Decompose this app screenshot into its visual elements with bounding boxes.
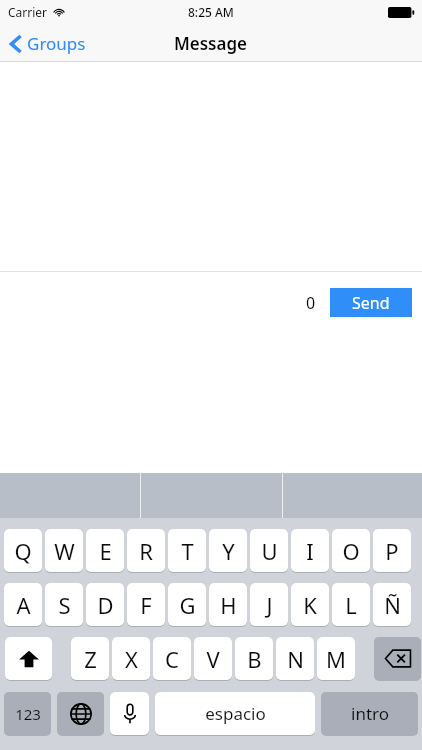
button[interactable]: D xyxy=(86,582,124,626)
staticText: Q xyxy=(14,536,32,566)
button[interactable] xyxy=(57,691,104,735)
button[interactable]: I xyxy=(291,528,329,572)
staticText: W xyxy=(54,536,75,566)
button[interactable]: Send xyxy=(330,288,412,317)
button[interactable]: J xyxy=(250,582,288,626)
button[interactable]: Z xyxy=(71,636,109,680)
button[interactable]: O xyxy=(332,528,370,572)
button[interactable]: F xyxy=(127,582,165,626)
staticText: R xyxy=(139,536,153,566)
staticText: K xyxy=(303,590,317,620)
staticText: E xyxy=(99,536,112,566)
button[interactable]: N xyxy=(276,636,314,680)
button[interactable]: T xyxy=(168,528,206,572)
staticText: espacio xyxy=(205,702,266,725)
staticText: Send xyxy=(352,292,390,314)
button[interactable]: W xyxy=(45,528,83,572)
staticText: M xyxy=(326,644,346,674)
button[interactable]: espacio xyxy=(155,691,315,735)
staticText: U xyxy=(261,536,278,566)
button[interactable]: A xyxy=(4,582,42,626)
staticText: V xyxy=(206,644,220,674)
button[interactable]: G xyxy=(168,582,206,626)
button[interactable]: Groups xyxy=(10,32,86,55)
staticText: 0 xyxy=(306,292,316,314)
staticText: S xyxy=(58,590,71,620)
button[interactable]: Ñ xyxy=(373,582,411,626)
button[interactable]: S xyxy=(45,582,83,626)
staticText: Carrier xyxy=(8,4,48,20)
staticText: T xyxy=(181,536,194,566)
staticText: G xyxy=(179,590,196,620)
staticText: Z xyxy=(84,644,97,674)
button[interactable] xyxy=(110,691,149,735)
staticText: L xyxy=(345,590,357,620)
button[interactable]: L xyxy=(332,582,370,626)
button[interactable]: U xyxy=(250,528,288,572)
staticText: Ñ xyxy=(384,590,401,620)
button[interactable]: B xyxy=(235,636,273,680)
staticText: A xyxy=(16,590,31,620)
staticText: H xyxy=(220,590,237,620)
button[interactable]: M xyxy=(317,636,355,680)
staticText: Message xyxy=(174,32,248,55)
staticText: I xyxy=(306,536,314,566)
button[interactable]: K xyxy=(291,582,329,626)
staticText: C xyxy=(165,644,179,674)
button[interactable]: V xyxy=(194,636,232,680)
button[interactable] xyxy=(374,636,421,680)
staticText: N xyxy=(287,644,304,674)
button[interactable]: P xyxy=(373,528,411,572)
staticText: 8:25 AM xyxy=(188,4,234,20)
button[interactable]: C xyxy=(153,636,191,680)
button[interactable]: 123 xyxy=(4,691,51,735)
staticText: 123 xyxy=(15,704,41,724)
button[interactable]: E xyxy=(86,528,124,572)
staticText: J xyxy=(266,590,273,620)
button[interactable] xyxy=(5,636,52,680)
staticText: O xyxy=(342,536,360,566)
staticText: Groups xyxy=(27,32,86,55)
staticText: F xyxy=(140,590,152,620)
staticText: intro xyxy=(351,702,389,725)
staticText: B xyxy=(247,644,262,674)
button[interactable]: intro xyxy=(321,691,418,735)
button[interactable]: Q xyxy=(4,528,42,572)
staticText: P xyxy=(385,536,399,566)
button[interactable]: H xyxy=(209,582,247,626)
staticText: X xyxy=(125,644,138,674)
staticText: D xyxy=(97,590,114,620)
button[interactable]: X xyxy=(112,636,150,680)
button[interactable]: Y xyxy=(209,528,247,572)
button[interactable]: R xyxy=(127,528,165,572)
staticText: Y xyxy=(222,536,235,566)
